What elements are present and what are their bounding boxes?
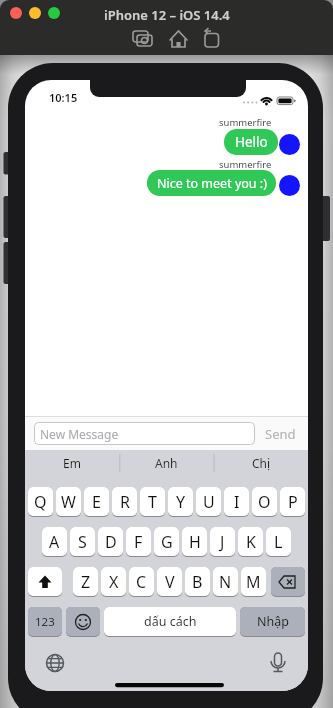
button[interactable]: G	[154, 527, 179, 556]
button[interactable]: L	[266, 527, 291, 556]
staticText: N	[219, 571, 232, 593]
staticText: V	[165, 571, 175, 593]
staticText: H	[189, 531, 201, 553]
staticText: Nice to meet you :)	[157, 175, 267, 192]
staticText: iPhone 12 – iOS 14.4	[104, 6, 230, 24]
button[interactable]: X	[101, 567, 126, 596]
button[interactable]: D	[98, 527, 123, 556]
button[interactable]: T	[140, 487, 165, 516]
staticText: Y	[176, 491, 186, 513]
staticText: T	[148, 491, 157, 513]
staticText: B	[192, 571, 203, 593]
staticText: summerfire	[219, 116, 272, 129]
staticText: 123	[35, 614, 55, 630]
button[interactable]: Em	[25, 452, 119, 474]
button[interactable]: Hello	[224, 129, 278, 155]
staticText: G	[161, 531, 173, 553]
staticText: R	[120, 491, 130, 513]
button[interactable]: Send	[259, 422, 301, 445]
staticText: Chị	[252, 455, 271, 471]
staticText: Nhập	[257, 613, 289, 630]
staticText: Z	[81, 571, 91, 593]
staticText: E	[92, 491, 101, 513]
button[interactable]: H	[182, 527, 207, 556]
button[interactable]: J	[210, 527, 235, 556]
button[interactable]: Nhập	[240, 607, 305, 636]
button[interactable]: Q	[28, 487, 53, 516]
button[interactable]: A	[42, 527, 67, 556]
staticText: C	[136, 571, 147, 593]
staticText: M	[246, 571, 261, 593]
button[interactable]: W	[56, 487, 81, 516]
staticText: K	[246, 531, 256, 553]
staticText: Hello	[235, 133, 268, 151]
staticText: J	[220, 531, 225, 553]
staticText: Q	[34, 491, 47, 513]
staticText: P	[288, 491, 298, 513]
button[interactable]: I	[224, 487, 249, 516]
button[interactable]: U	[196, 487, 221, 516]
staticText: New Message	[40, 426, 119, 442]
button[interactable]: R	[112, 487, 137, 516]
button[interactable]: dấu cách	[104, 607, 236, 636]
staticText: W	[61, 491, 76, 513]
button[interactable]: M	[241, 567, 266, 596]
staticText: dấu cách	[144, 613, 197, 630]
button[interactable]: Chị	[214, 452, 308, 474]
button[interactable]: O	[252, 487, 277, 516]
staticText: X	[109, 571, 119, 593]
button[interactable]: F	[126, 527, 151, 556]
button[interactable]: Nice to meet you :)	[147, 170, 276, 196]
staticText: 10:15	[49, 90, 78, 105]
button[interactable]: New Message	[34, 422, 255, 445]
staticText: F	[134, 531, 143, 553]
staticText: summerfire	[219, 158, 272, 171]
button[interactable]: P	[280, 487, 305, 516]
staticText: U	[203, 491, 215, 513]
button[interactable]: C	[129, 567, 154, 596]
staticText: I	[234, 491, 240, 513]
staticText: O	[258, 491, 271, 513]
button[interactable]: K	[238, 527, 263, 556]
staticText: Anh	[155, 455, 178, 471]
button[interactable]: E	[84, 487, 109, 516]
staticText: A	[49, 531, 60, 553]
button[interactable]: N	[213, 567, 238, 596]
button[interactable]	[28, 567, 62, 596]
staticText: D	[105, 531, 117, 553]
button[interactable]	[66, 607, 100, 636]
button[interactable]	[271, 567, 305, 596]
button[interactable]: S	[70, 527, 95, 556]
button[interactable]: B	[185, 567, 210, 596]
staticText: S	[78, 531, 87, 553]
button[interactable]: Z	[73, 567, 98, 596]
staticText: Em	[63, 455, 81, 471]
staticText: L	[274, 531, 283, 553]
button[interactable]: 123	[28, 607, 62, 636]
button[interactable]: Y	[168, 487, 193, 516]
button[interactable]: V	[157, 567, 182, 596]
button[interactable]: Anh	[119, 452, 213, 474]
staticText: Send	[265, 425, 296, 443]
